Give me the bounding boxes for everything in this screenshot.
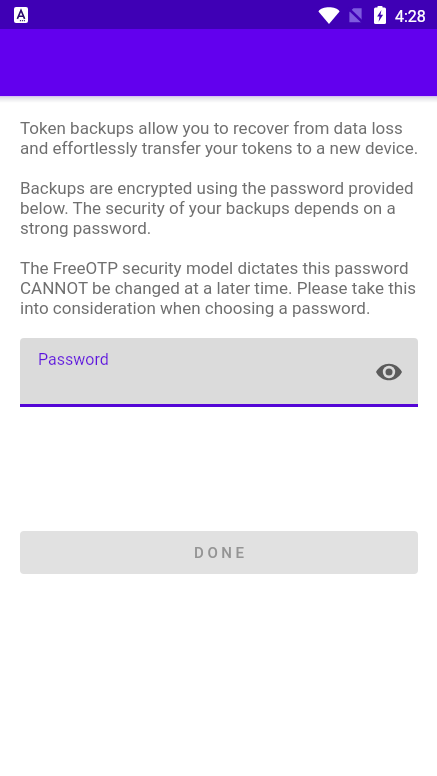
staticText: DONE	[194, 544, 248, 562]
button[interactable]: DONE	[20, 531, 418, 574]
staticText: The FreeOTP security model dictates this…	[20, 258, 420, 318]
staticText: 4:28	[395, 7, 426, 26]
staticText: Password	[38, 350, 109, 369]
button[interactable]: Show password	[369, 352, 409, 392]
button[interactable]: Password	[20, 338, 418, 404]
staticText: Token backups allow you to recover from …	[20, 118, 420, 158]
staticText: Backups are encrypted using the password…	[20, 178, 420, 238]
